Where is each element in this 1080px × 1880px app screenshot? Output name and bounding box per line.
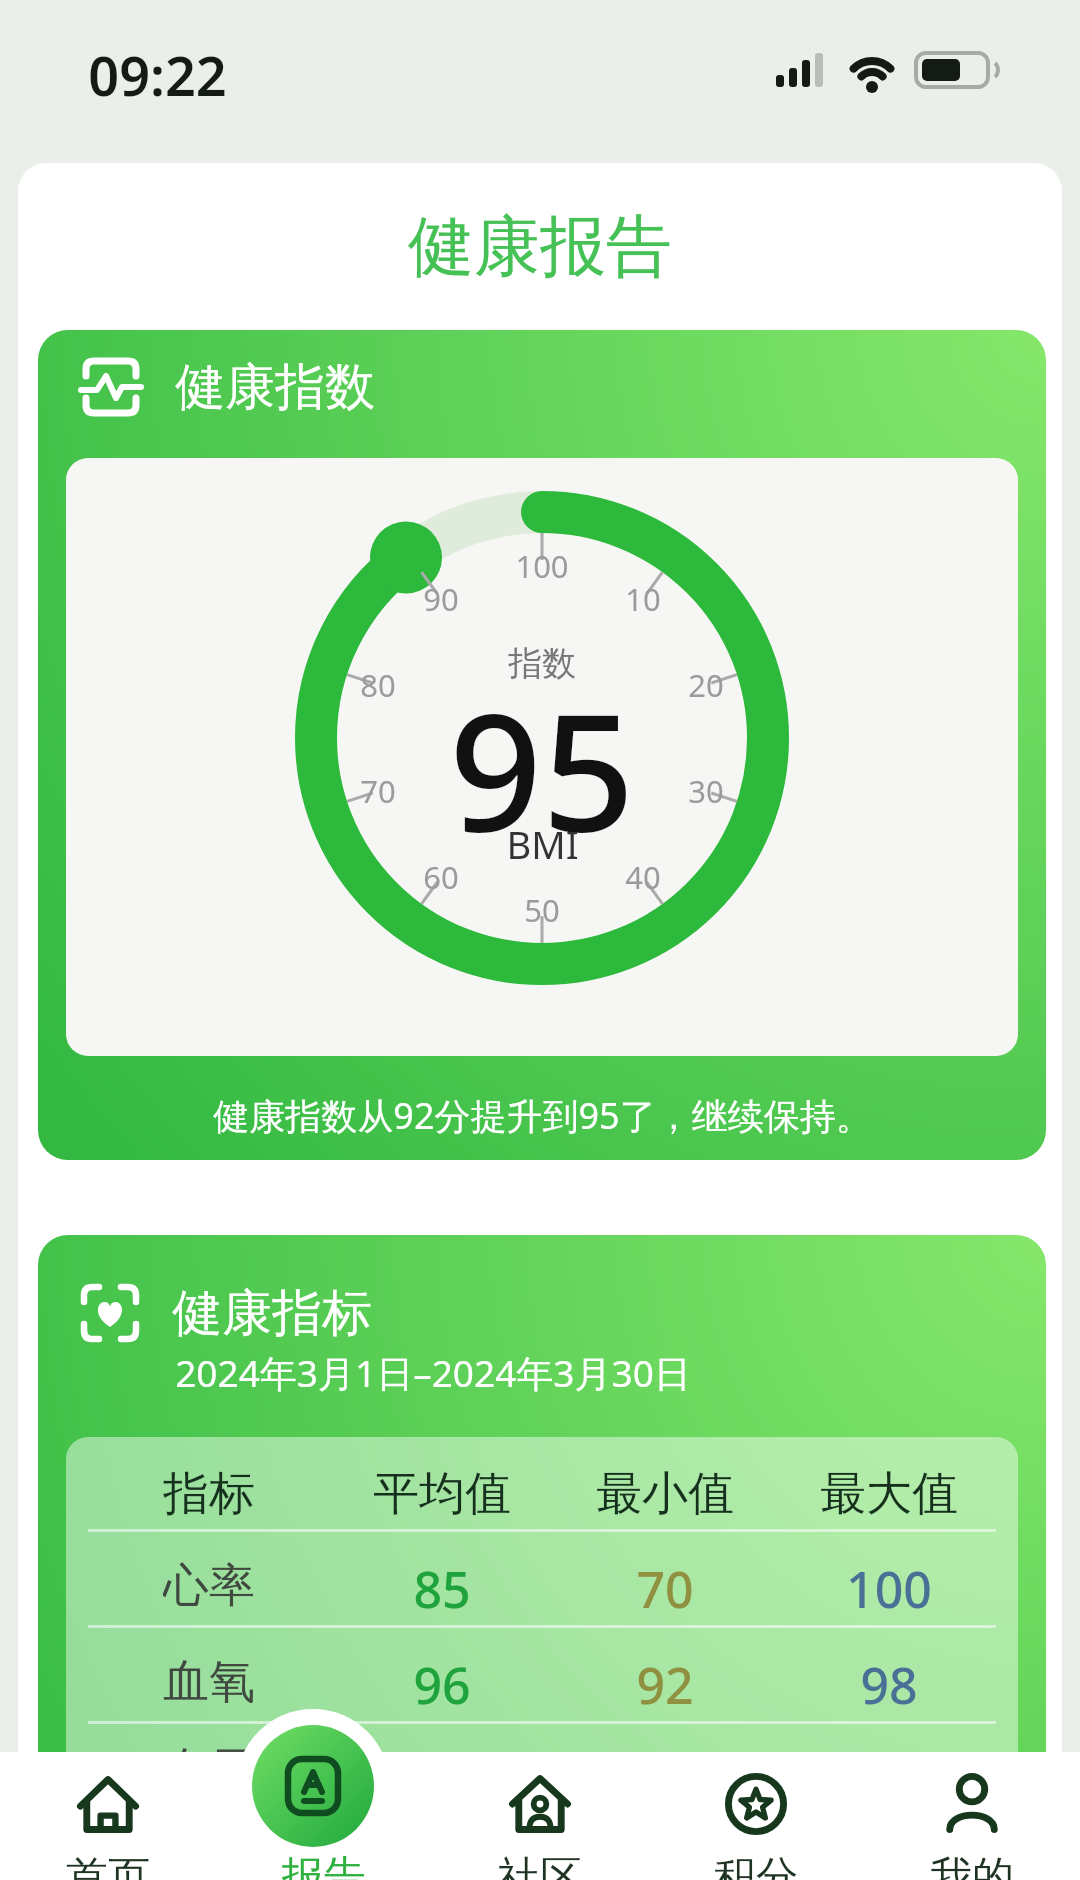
staticText: 血压 xyxy=(163,1741,255,1797)
button[interactable]: 首页 xyxy=(0,1752,216,1880)
button[interactable]: 健康指数 xyxy=(38,330,1046,1160)
staticText: 我的 xyxy=(930,1851,1014,1880)
staticText: 首页 xyxy=(66,1851,150,1880)
staticText: 120 xyxy=(399,1739,485,1799)
staticText: 平均值 xyxy=(373,1465,511,1521)
staticText: 80 xyxy=(360,664,396,706)
button[interactable]: 积分 xyxy=(648,1752,864,1880)
staticText: 心率 xyxy=(163,1557,255,1613)
staticText: 85 xyxy=(413,1555,471,1615)
staticText: 最大值 xyxy=(820,1465,958,1521)
staticText: 100 xyxy=(515,545,569,587)
staticText: 70 xyxy=(360,770,396,812)
staticText: 健康指数 xyxy=(175,356,375,418)
button[interactable]: 社区 xyxy=(432,1752,648,1880)
staticText: 健康指数从92分提升到95了，继续保持。 xyxy=(213,1091,872,1140)
staticText: 30 xyxy=(688,770,724,812)
staticText: 健康指标 xyxy=(172,1282,372,1344)
staticText: 2024年3月1日–2024年3月30日 xyxy=(175,1347,691,1397)
staticText: 社区 xyxy=(498,1851,582,1880)
staticText: 健康报告 xyxy=(408,205,672,288)
staticText: 40 xyxy=(625,856,661,898)
staticText: 92 xyxy=(636,1651,694,1711)
staticText: 血氧 xyxy=(163,1653,255,1709)
staticText: 20 xyxy=(688,664,724,706)
staticText: 96 xyxy=(413,1651,471,1711)
button[interactable]: 报告 xyxy=(216,1752,432,1880)
staticText: 90 xyxy=(423,578,459,620)
staticText: 70 xyxy=(636,1555,694,1615)
staticText: 110 xyxy=(622,1739,708,1799)
staticText: 最小值 xyxy=(596,1465,734,1521)
staticText: 10 xyxy=(625,578,661,620)
button[interactable]: 我的 xyxy=(864,1752,1080,1880)
staticText: 60 xyxy=(423,856,459,898)
staticText: 100 xyxy=(846,1555,932,1615)
staticText: 98 xyxy=(860,1651,918,1711)
button[interactable] xyxy=(252,1725,374,1847)
staticText: 130 xyxy=(846,1739,932,1799)
staticText: BMI xyxy=(506,818,579,868)
staticText: 积分 xyxy=(714,1851,798,1880)
staticText: 指标 xyxy=(163,1465,255,1521)
staticText: 指数 xyxy=(508,642,576,685)
staticText: 50 xyxy=(524,889,560,931)
staticText: 09:22 xyxy=(88,38,227,112)
button[interactable]: 健康指标 xyxy=(38,1235,1046,1880)
staticText: 报告 xyxy=(282,1851,366,1880)
staticText: 95 xyxy=(449,658,635,858)
